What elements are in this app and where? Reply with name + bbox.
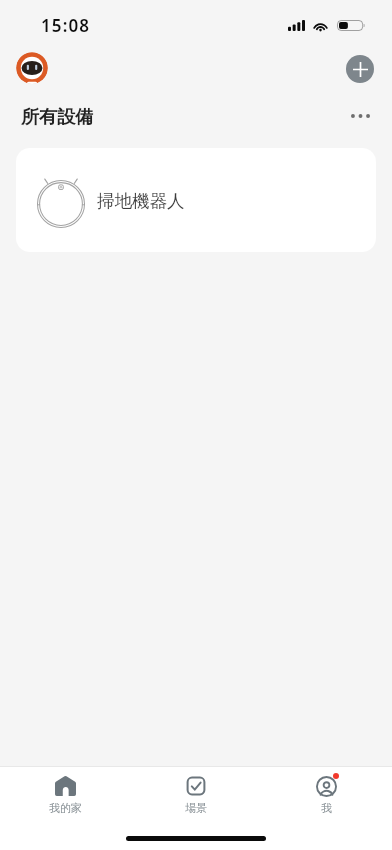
button[interactable]: 我的家 <box>0 766 130 816</box>
button[interactable]: Add device <box>346 55 374 83</box>
button[interactable]: 我 <box>261 766 392 816</box>
staticText: 我 <box>321 801 332 815</box>
staticText: 場景 <box>185 801 207 815</box>
button[interactable]: More options <box>341 102 379 130</box>
staticText: 掃地機器人 <box>97 190 185 212</box>
button[interactable]: 掃地機器人 <box>16 148 376 252</box>
staticText: 所有設備 <box>21 106 93 129</box>
button[interactable]: 場景 <box>130 766 261 816</box>
button[interactable]: Home profile <box>16 52 48 84</box>
staticText: 15:08 <box>41 14 91 37</box>
staticText: 我的家 <box>49 801 82 815</box>
